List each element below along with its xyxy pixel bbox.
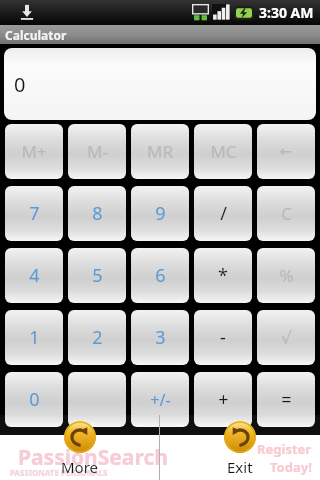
staticText: -: [220, 325, 226, 350]
button[interactable]: [68, 372, 126, 427]
staticText: Calculator: [5, 27, 67, 43]
staticText: 9: [155, 201, 166, 226]
staticText: 3:30 AM: [259, 3, 314, 22]
staticText: M+: [21, 140, 47, 163]
button[interactable]: Exit: [160, 415, 320, 480]
staticText: *: [218, 263, 228, 288]
staticText: MR: [147, 140, 173, 163]
staticText: M-: [87, 140, 108, 163]
staticText: %: [279, 264, 294, 287]
staticText: PassionSearch: [18, 443, 168, 472]
button[interactable]: √: [257, 310, 315, 365]
button[interactable]: +/-: [131, 372, 189, 427]
button[interactable]: %: [257, 248, 315, 303]
button[interactable]: C: [257, 186, 315, 241]
staticText: Exit: [227, 457, 253, 477]
button[interactable]: MR: [131, 124, 189, 179]
staticText: 3: [155, 325, 166, 350]
button[interactable]: *: [194, 248, 252, 303]
button[interactable]: 7: [5, 186, 63, 241]
staticText: =: [281, 387, 292, 412]
staticText: 1: [29, 325, 40, 350]
staticText: 5: [92, 263, 103, 288]
staticText: 6: [155, 263, 166, 288]
button[interactable]: 0: [4, 48, 316, 120]
staticText: 2: [92, 325, 103, 350]
button[interactable]: MC: [194, 124, 252, 179]
staticText: +/-: [150, 389, 171, 411]
staticText: /: [220, 201, 227, 226]
staticText: PASSIONATE PERSONALS: [10, 467, 108, 478]
staticText: 0: [14, 71, 26, 98]
button[interactable]: =: [257, 372, 315, 427]
button[interactable]: 2: [68, 310, 126, 365]
button[interactable]: 3: [131, 310, 189, 365]
staticText: 4: [29, 263, 40, 288]
button[interactable]: 9: [131, 186, 189, 241]
button[interactable]: +: [194, 372, 252, 427]
staticText: 7: [29, 201, 40, 226]
button[interactable]: ←: [257, 124, 315, 179]
staticText: C: [281, 202, 292, 225]
button[interactable]: More: [0, 415, 159, 480]
button[interactable]: 4: [5, 248, 63, 303]
button[interactable]: M-: [68, 124, 126, 179]
button[interactable]: 5: [68, 248, 126, 303]
button[interactable]: 1: [5, 310, 63, 365]
staticText: ←: [279, 142, 293, 161]
button[interactable]: 8: [68, 186, 126, 241]
staticText: √: [281, 328, 292, 348]
button[interactable]: 6: [131, 248, 189, 303]
staticText: Register: [257, 440, 312, 458]
button[interactable]: /: [194, 186, 252, 241]
staticText: 0: [29, 387, 40, 412]
staticText: Today!: [270, 458, 312, 476]
staticText: 8: [92, 201, 103, 226]
staticText: MC: [210, 140, 237, 163]
staticText: More: [61, 457, 99, 477]
staticText: +: [218, 387, 229, 412]
button[interactable]: -: [194, 310, 252, 365]
button[interactable]: M+: [5, 124, 63, 179]
button[interactable]: 0: [5, 372, 63, 427]
